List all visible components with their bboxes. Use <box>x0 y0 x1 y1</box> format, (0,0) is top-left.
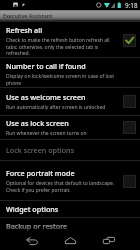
button[interactable]: Widget options <box>0 201 140 217</box>
staticText: Use as welcome screen <box>6 94 86 102</box>
button[interactable]: Back <box>0 231 102 250</box>
staticText: Lock screen options <box>6 147 75 155</box>
staticText: Force portrait mode <box>6 170 75 178</box>
button[interactable]: Number to call if found <box>0 58 140 87</box>
staticText: Executive Assistant <box>3 12 53 19</box>
button[interactable]: Use as lock screen <box>0 116 140 139</box>
staticText: Run automatically after screen is unlock… <box>6 104 106 111</box>
staticText: Optional for devices that default to lan… <box>6 180 115 194</box>
staticText: Widget options <box>6 206 59 214</box>
button[interactable]: Backup or restore <box>0 218 140 234</box>
button[interactable]: Lock screen options <box>0 140 140 160</box>
staticText: Display on lock/welcome screen in case o… <box>6 73 115 87</box>
staticText: 9:18 <box>125 1 138 10</box>
staticText: Run whenever the screen turns on <box>6 130 87 137</box>
button[interactable]: Force portrait mode <box>0 161 140 200</box>
button[interactable]: Use as welcome screen <box>0 88 140 115</box>
staticText: Refresh all <box>6 27 43 35</box>
staticText: Use as lock screen <box>6 120 69 128</box>
staticText: Check to make the refresh button refresh… <box>6 37 110 57</box>
button[interactable]: Refresh all <box>0 22 140 57</box>
button[interactable]: Home <box>0 231 140 250</box>
staticText: Backup or restore <box>6 223 68 231</box>
button[interactable]: Recent apps <box>39 231 140 250</box>
staticText: Number to call if found <box>6 63 86 71</box>
